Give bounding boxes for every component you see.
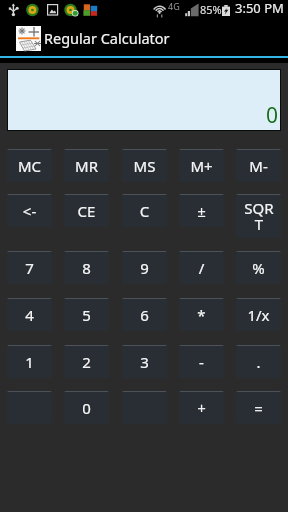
button[interactable]: ± (179, 194, 224, 227)
staticText: 0 (266, 101, 279, 130)
staticText: 2 (65, 352, 108, 372)
staticText: 7 (8, 258, 51, 278)
button[interactable] (7, 391, 52, 424)
button[interactable] (122, 391, 167, 424)
button[interactable]: MS (122, 149, 167, 182)
button[interactable]: <- (7, 194, 52, 227)
staticText: 4G (168, 0, 180, 12)
staticText: <- (8, 201, 51, 221)
button[interactable]: MC (7, 149, 52, 182)
other: Battery charging (222, 5, 230, 16)
staticText: 5 (65, 305, 108, 325)
button[interactable]: 0 (64, 391, 109, 424)
staticText: CE (65, 201, 108, 221)
staticText: 1 (8, 352, 51, 372)
staticText: 8 (65, 258, 108, 278)
staticText: 3:50 PM (235, 0, 284, 17)
staticText: MS (123, 156, 166, 176)
button[interactable]: 1 (7, 345, 52, 378)
button[interactable]: C (122, 194, 167, 227)
button[interactable]: M+ (179, 149, 224, 182)
staticText: 6 (123, 305, 166, 325)
staticText: 85% (200, 2, 222, 17)
staticText: = (237, 398, 280, 418)
button[interactable]: 6 (122, 298, 167, 331)
staticText: 1/x (237, 305, 280, 325)
staticText: 0 (65, 398, 108, 418)
staticText: M- (237, 156, 280, 176)
staticText: C (123, 201, 166, 221)
staticText: . (237, 352, 280, 372)
button[interactable]: % (236, 251, 281, 284)
staticText: / (180, 258, 223, 278)
staticText: M+ (180, 156, 223, 176)
button[interactable]: Regular Calculator icon (0, 20, 288, 56)
staticText: 3 (123, 352, 166, 372)
staticText: % (237, 258, 280, 278)
staticText: Regular Calculator (44, 28, 170, 48)
other: Status notifications (0, 0, 288, 20)
staticText: MC (8, 156, 51, 176)
button[interactable]: CE (64, 194, 109, 227)
button[interactable]: - (179, 345, 224, 378)
staticText: SQRT (244, 198, 274, 234)
button[interactable]: 1/x (236, 298, 281, 331)
button[interactable]: M- (236, 149, 281, 182)
button[interactable]: MR (64, 149, 109, 182)
button[interactable]: 3 (122, 345, 167, 378)
button[interactable]: 9 (122, 251, 167, 284)
staticText: MR (65, 156, 108, 176)
button[interactable]: 7 (7, 251, 52, 284)
button[interactable]: SQRT (236, 194, 281, 238)
button[interactable]: / (179, 251, 224, 284)
button[interactable]: 2 (64, 345, 109, 378)
staticText: + (180, 398, 223, 418)
button[interactable]: + (179, 391, 224, 424)
button[interactable]: = (236, 391, 281, 424)
other: Regular Calculator icon (16, 26, 41, 51)
button[interactable]: 5 (64, 298, 109, 331)
staticText: ± (180, 201, 223, 221)
button[interactable]: * (179, 298, 224, 331)
staticText: 9 (123, 258, 166, 278)
button[interactable]: 4 (7, 298, 52, 331)
button[interactable]: 8 (64, 251, 109, 284)
button[interactable]: . (236, 345, 281, 378)
staticText: * (180, 305, 223, 325)
staticText: 4 (8, 305, 51, 325)
staticText: - (180, 352, 223, 372)
